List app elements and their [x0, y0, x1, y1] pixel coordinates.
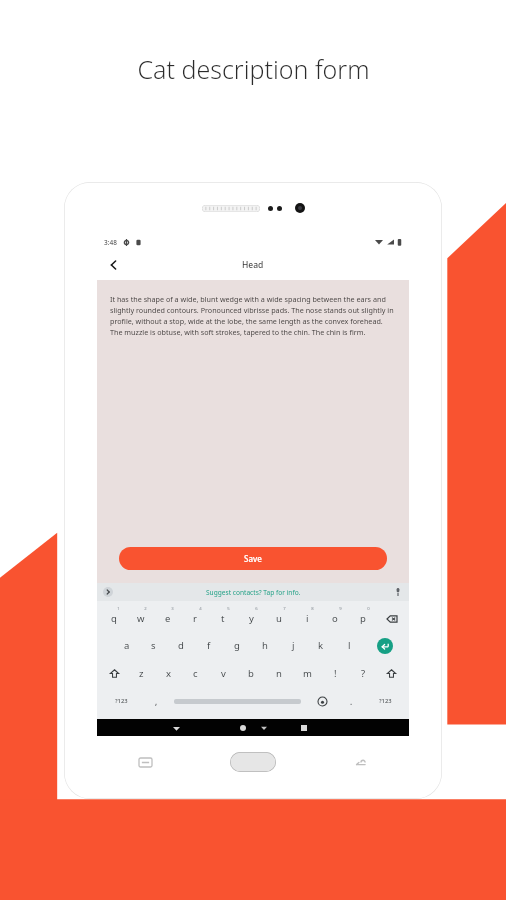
- button[interactable]: d: [167, 632, 195, 659]
- staticText: ?: [361, 667, 366, 680]
- staticText: Suggest contacts? Tap for info.: [206, 588, 301, 597]
- staticText: e: [165, 612, 171, 625]
- staticText: c: [193, 667, 198, 680]
- button[interactable]: b: [237, 659, 265, 687]
- staticText: 9: [339, 606, 342, 612]
- button[interactable]: 3: [154, 605, 181, 632]
- button[interactable]: Back: [350, 751, 372, 773]
- button[interactable]: 1: [100, 605, 127, 632]
- staticText: a: [124, 639, 130, 652]
- button[interactable]: 8: [293, 605, 321, 632]
- button[interactable]: j: [279, 632, 307, 659]
- staticText: 2: [144, 606, 147, 612]
- staticText: w: [137, 612, 145, 625]
- staticText: 3:48: [104, 238, 117, 247]
- button[interactable]: x: [155, 659, 182, 687]
- staticText: 0: [367, 606, 370, 612]
- button[interactable]: f: [195, 632, 223, 659]
- button[interactable]: Shift: [377, 659, 406, 687]
- button[interactable]: Recents: [296, 720, 312, 736]
- button[interactable]: l: [335, 632, 363, 659]
- staticText: o: [332, 612, 338, 625]
- staticText: i: [306, 612, 309, 625]
- staticText: 7: [283, 606, 286, 612]
- staticText: l: [348, 639, 351, 652]
- button[interactable]: m: [293, 659, 321, 687]
- button[interactable]: Back: [102, 253, 126, 277]
- button[interactable]: 2: [127, 605, 154, 632]
- button[interactable]: ?: [349, 659, 377, 687]
- staticText: s: [151, 639, 156, 652]
- staticText: q: [111, 612, 117, 625]
- staticText: n: [276, 667, 282, 680]
- staticText: !: [334, 667, 337, 680]
- staticText: r: [193, 612, 197, 625]
- button[interactable]: c: [182, 659, 209, 687]
- staticText: p: [360, 612, 366, 625]
- button[interactable]: Backspace: [377, 605, 406, 632]
- button[interactable]: s: [140, 632, 167, 659]
- button[interactable]: k: [307, 632, 335, 659]
- button[interactable]: g: [223, 632, 251, 659]
- button[interactable]: 6: [237, 605, 265, 632]
- button[interactable]: 0: [349, 605, 377, 632]
- button[interactable]: Enter: [363, 632, 406, 659]
- staticText: f: [207, 639, 211, 652]
- staticText: 1: [117, 606, 120, 612]
- staticText: z: [139, 667, 144, 680]
- staticText: j: [292, 639, 295, 652]
- button[interactable]: 7: [265, 605, 293, 632]
- button[interactable]: Hide keyboard: [168, 720, 184, 736]
- button[interactable]: .: [338, 687, 364, 715]
- button[interactable]: Save: [119, 547, 387, 570]
- staticText: k: [318, 639, 324, 652]
- button[interactable]: h: [251, 632, 279, 659]
- staticText: m: [303, 667, 312, 680]
- staticText: It has the shape of a wide, blunt wedge …: [110, 294, 396, 337]
- staticText: 3: [171, 606, 174, 612]
- button[interactable]: Emoji: [306, 687, 338, 715]
- button[interactable]: Back: [257, 721, 271, 735]
- staticText: Save: [244, 553, 262, 564]
- staticText: x: [166, 667, 172, 680]
- staticText: ?123: [379, 697, 392, 705]
- button[interactable]: a: [113, 632, 140, 659]
- button[interactable]: 9: [321, 605, 349, 632]
- button[interactable]: Voice input: [392, 586, 404, 598]
- staticText: h: [262, 639, 268, 652]
- staticText: y: [249, 612, 254, 625]
- staticText: t: [221, 612, 225, 625]
- staticText: ?123: [115, 697, 128, 705]
- staticText: g: [234, 639, 240, 652]
- staticText: 8: [311, 606, 314, 612]
- button[interactable]: !: [321, 659, 349, 687]
- staticText: .: [350, 696, 353, 707]
- staticText: u: [276, 612, 282, 625]
- staticText: 4: [199, 606, 202, 612]
- staticText: Head: [242, 259, 264, 271]
- button[interactable]: ,: [143, 687, 169, 715]
- button[interactable]: Expand toolbar: [102, 586, 114, 598]
- staticText: v: [221, 667, 226, 680]
- staticText: d: [178, 639, 184, 652]
- staticText: b: [248, 667, 254, 680]
- staticText: Cat description form: [137, 52, 370, 86]
- button[interactable]: ?123: [364, 687, 406, 715]
- button[interactable]: Shift: [100, 659, 128, 687]
- button[interactable]: Recent apps: [134, 751, 156, 773]
- button[interactable]: Space: [169, 687, 306, 715]
- staticText: 5: [227, 606, 230, 612]
- button[interactable]: 4: [181, 605, 209, 632]
- button[interactable]: Suggest contacts? Tap for info.: [114, 588, 392, 597]
- staticText: ,: [155, 696, 158, 707]
- button[interactable]: Home: [235, 720, 251, 736]
- button[interactable]: Home: [230, 752, 276, 772]
- button[interactable]: n: [265, 659, 293, 687]
- button[interactable]: 5: [209, 605, 237, 632]
- button[interactable]: ?123: [100, 687, 143, 715]
- button[interactable]: z: [128, 659, 155, 687]
- staticText: 6: [255, 606, 258, 612]
- button[interactable]: v: [209, 659, 237, 687]
